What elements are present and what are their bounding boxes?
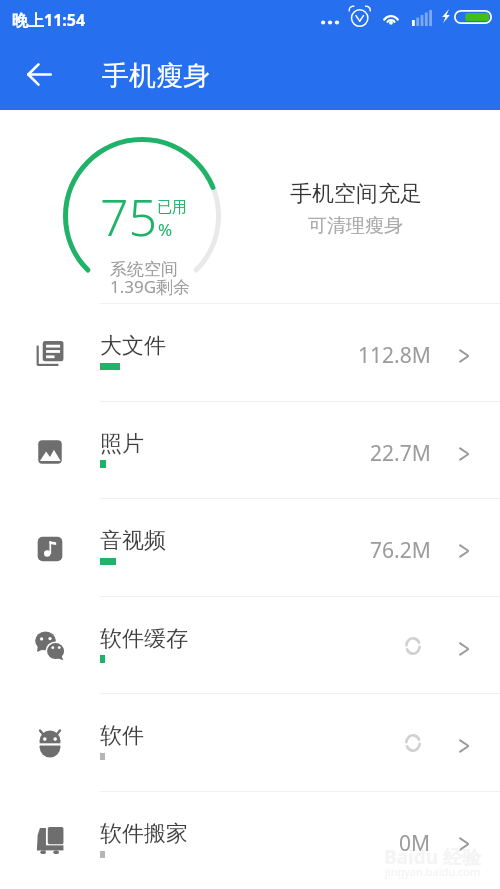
staticText: 可清理瘦身: [308, 214, 403, 238]
button[interactable]: 软件缓存: [0, 596, 500, 694]
staticText: 音视频: [100, 527, 166, 555]
staticText: 手机瘦身: [102, 59, 210, 93]
staticText: 照片: [100, 430, 144, 458]
button[interactable]: 音视频: [0, 498, 500, 596]
staticText: 112.8M: [358, 341, 431, 369]
button[interactable]: 返回: [15, 50, 63, 98]
staticText: 75: [100, 183, 158, 251]
staticText: 76.2M: [370, 536, 431, 564]
staticText: 大文件: [100, 332, 166, 360]
staticText: 手机空间充足: [290, 180, 422, 208]
staticText: 软件缓存: [100, 625, 188, 653]
staticText: 软件: [100, 722, 144, 750]
button[interactable]: 大文件: [0, 303, 500, 401]
button[interactable]: 照片: [0, 401, 500, 499]
button[interactable]: 软件: [0, 693, 500, 791]
button[interactable]: 软件搬家: [0, 791, 500, 889]
staticText: 软件搬家: [100, 820, 188, 848]
staticText: %: [158, 218, 173, 241]
staticText: jingyan.baidu.com: [385, 864, 481, 879]
staticText: 0M: [399, 829, 431, 857]
staticText: 22.7M: [370, 439, 431, 467]
staticText: 系统空间: [110, 259, 178, 280]
staticText: 1.39G剩余: [110, 275, 191, 298]
staticText: Baidu 经验: [384, 844, 481, 870]
staticText: 已用: [157, 198, 187, 217]
staticText: 晚上11:54: [12, 9, 86, 31]
